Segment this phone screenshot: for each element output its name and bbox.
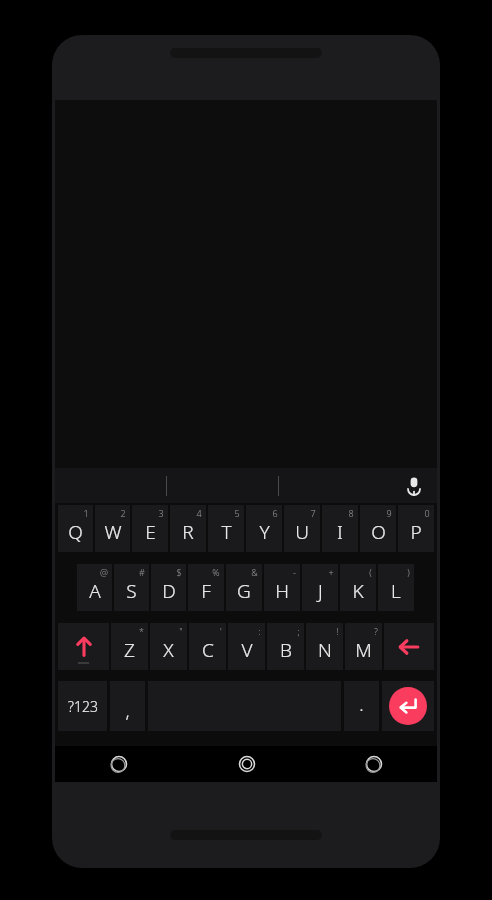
- staticText: S: [126, 578, 137, 604]
- staticText: V: [241, 637, 253, 663]
- staticText: N: [318, 637, 332, 663]
- staticText: 8: [348, 507, 354, 519]
- staticText: P: [410, 519, 422, 545]
- button[interactable]: Backspace: [384, 623, 434, 670]
- staticText: .: [359, 692, 364, 717]
- button[interactable]: [55, 468, 167, 503]
- button[interactable]: ,: [110, 681, 145, 731]
- staticText: X: [163, 637, 174, 663]
- button[interactable]: Home: [183, 746, 310, 782]
- button[interactable]: Q: [58, 505, 93, 552]
- button[interactable]: O: [360, 505, 396, 552]
- staticText: 3: [158, 507, 164, 519]
- staticText: 4: [196, 507, 202, 519]
- button[interactable]: V: [228, 623, 265, 670]
- staticText: 6: [272, 507, 278, 519]
- staticText: ): [407, 566, 410, 578]
- button[interactable]: ?123: [58, 681, 107, 731]
- button[interactable]: N: [306, 623, 343, 670]
- button[interactable]: B: [267, 623, 304, 670]
- staticText: Y: [259, 519, 270, 545]
- staticText: O: [371, 519, 386, 545]
- button[interactable]: Shift: [58, 623, 109, 670]
- button[interactable]: J: [302, 564, 338, 611]
- button[interactable]: U: [284, 505, 320, 552]
- button[interactable]: W: [95, 505, 130, 552]
- staticText: 2: [120, 507, 126, 519]
- staticText: !: [336, 625, 339, 637]
- staticText: T: [221, 519, 232, 545]
- staticText: U: [295, 519, 309, 545]
- staticText: C: [202, 637, 214, 663]
- staticText: ?123: [68, 697, 98, 716]
- staticText: :: [258, 625, 261, 637]
- staticText: M: [355, 637, 372, 663]
- button[interactable]: E: [132, 505, 168, 552]
- staticText: Q: [68, 519, 83, 545]
- staticText: I: [337, 519, 343, 545]
- staticText: D: [162, 578, 176, 604]
- staticText: %: [212, 566, 220, 578]
- staticText: ,: [125, 699, 130, 724]
- staticText: 5: [234, 507, 240, 519]
- staticText: #: [139, 566, 145, 578]
- button[interactable]: T: [208, 505, 244, 552]
- staticText: H: [275, 578, 289, 604]
- button[interactable]: Z: [111, 623, 148, 670]
- button[interactable]: S: [114, 564, 149, 611]
- button[interactable]: .: [344, 681, 379, 731]
- button[interactable]: [167, 468, 279, 503]
- button[interactable]: R: [170, 505, 206, 552]
- staticText: L: [391, 578, 401, 604]
- staticText: F: [201, 578, 211, 604]
- staticText: K: [352, 578, 364, 604]
- button[interactable]: Y: [246, 505, 282, 552]
- button[interactable]: A: [77, 564, 112, 611]
- button[interactable]: C: [189, 623, 226, 670]
- button[interactable]: D: [151, 564, 186, 611]
- button[interactable]: Back: [55, 746, 183, 782]
- staticText: @: [100, 566, 108, 578]
- button[interactable]: M: [345, 623, 382, 670]
- staticText: ?: [374, 625, 378, 637]
- button[interactable]: Recents: [310, 746, 437, 782]
- button[interactable]: H: [264, 564, 300, 611]
- staticText: 7: [310, 507, 316, 519]
- staticText: 0: [424, 507, 430, 519]
- staticText: R: [182, 519, 194, 545]
- button[interactable]: F: [188, 564, 224, 611]
- staticText: *: [139, 625, 144, 637]
- staticText: -: [293, 566, 296, 578]
- staticText: &: [251, 566, 258, 578]
- button[interactable]: I: [322, 505, 358, 552]
- staticText: E: [145, 519, 156, 545]
- staticText: A: [89, 578, 101, 604]
- button[interactable]: X: [150, 623, 187, 670]
- staticText: 1: [83, 507, 89, 519]
- button[interactable]: G: [226, 564, 262, 611]
- staticText: (: [369, 566, 372, 578]
- staticText: $: [176, 566, 182, 578]
- staticText: G: [237, 578, 251, 604]
- staticText: ": [179, 625, 183, 637]
- button[interactable]: Enter: [382, 681, 434, 731]
- staticText: 9: [386, 507, 392, 519]
- staticText: ': [220, 625, 222, 637]
- staticText: Z: [124, 637, 135, 663]
- button[interactable]: K: [340, 564, 376, 611]
- staticText: B: [280, 637, 292, 663]
- button[interactable]: P: [398, 505, 434, 552]
- button[interactable]: Voice input: [391, 468, 437, 503]
- staticText: +: [328, 566, 334, 578]
- staticText: ;: [297, 625, 300, 637]
- staticText: W: [104, 519, 122, 545]
- staticText: J: [318, 578, 323, 604]
- button[interactable]: L: [378, 564, 414, 611]
